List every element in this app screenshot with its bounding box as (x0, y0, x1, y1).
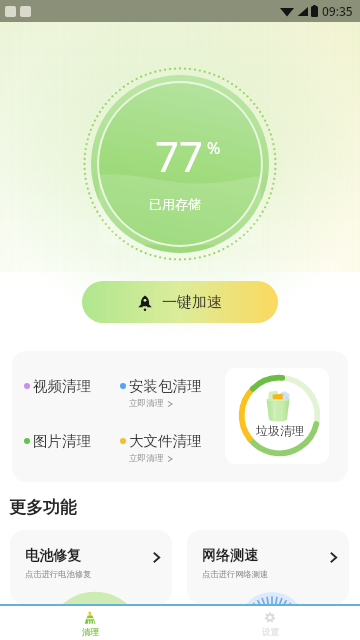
button[interactable]: 图片清理 (24, 432, 91, 450)
staticText: 点击进行网络测速 (202, 569, 269, 579)
staticText: 一键加速 (162, 293, 222, 312)
button[interactable]: 网络测速 (187, 530, 349, 604)
staticText: 更多功能 (9, 497, 77, 518)
button[interactable]: 清理 (0, 606, 180, 638)
staticText: 立即清理 (129, 398, 164, 409)
staticText: 垃圾清理 (256, 423, 304, 438)
staticText: 大文件清理 (129, 432, 202, 450)
staticText: 已用存储 (149, 196, 201, 212)
button[interactable]: 设置 (180, 606, 360, 638)
staticText: 77 (155, 127, 204, 184)
staticText: % (207, 137, 221, 159)
staticText: 安装包清理 (129, 377, 202, 395)
button[interactable]: 安装包清理 (120, 377, 202, 409)
staticText: 视频清理 (33, 377, 91, 395)
button[interactable]: 大文件清理 (120, 432, 202, 464)
staticText: 清理 (82, 627, 99, 638)
staticText: 电池修复 (25, 547, 81, 565)
button[interactable]: 视频清理 (24, 377, 91, 395)
button[interactable]: 一键加速 (82, 281, 278, 323)
button[interactable]: 电池修复 (10, 530, 172, 604)
staticText: 点击进行电池修复 (25, 569, 92, 579)
staticText: 图片清理 (33, 432, 91, 450)
staticText: 网络测速 (202, 547, 258, 565)
button[interactable]: 垃圾清理 (225, 368, 329, 464)
staticText: 立即清理 (129, 453, 164, 464)
staticText: 09:35 (322, 3, 353, 19)
staticText: 设置 (262, 627, 279, 638)
